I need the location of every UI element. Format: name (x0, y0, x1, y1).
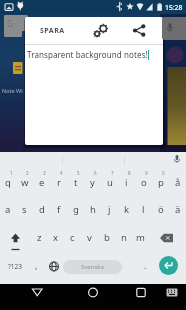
staticText: Svenska (81, 263, 104, 271)
staticText: f (57, 203, 61, 216)
staticText: Transparent background notes! (27, 49, 148, 60)
staticText: w (21, 176, 29, 189)
button[interactable]: j (101, 196, 118, 223)
button[interactable]: i (118, 169, 135, 196)
button[interactable]: w (16, 169, 33, 196)
staticText: G (7, 18, 13, 29)
staticText: i (125, 176, 128, 189)
button[interactable]: r (50, 169, 67, 196)
staticText: 1 (10, 170, 13, 176)
button[interactable]: m (132, 223, 149, 251)
staticText: t (74, 176, 78, 189)
staticText: x (53, 231, 59, 244)
button[interactable]: x (47, 223, 64, 251)
staticText: p (158, 176, 164, 189)
staticText: e (39, 176, 45, 189)
button[interactable] (162, 17, 186, 40)
button[interactable]: n (115, 223, 132, 251)
button[interactable]: å (169, 169, 186, 196)
staticText: 0 (162, 170, 165, 176)
button[interactable]: b (98, 223, 115, 251)
button[interactable]: d (33, 196, 50, 223)
staticText: 15:28 (165, 3, 183, 12)
button[interactable]: p (152, 169, 169, 196)
staticText: ?123 (8, 262, 22, 271)
staticText: k (124, 203, 130, 216)
button[interactable]: z (31, 223, 47, 251)
button[interactable] (149, 223, 186, 251)
staticText: ä (175, 203, 181, 216)
button[interactable]: v (81, 223, 98, 251)
button[interactable]: q (0, 169, 16, 196)
button[interactable]: ?123 (0, 251, 29, 282)
button[interactable]: SPARA (29, 17, 89, 44)
staticText: q (5, 176, 11, 189)
button[interactable]: o (135, 169, 152, 196)
button[interactable] (159, 256, 178, 275)
button[interactable]: k (118, 196, 135, 223)
staticText: c (70, 231, 75, 244)
staticText: 7 (111, 170, 114, 176)
staticText: r (57, 176, 61, 189)
staticText: m (136, 231, 145, 244)
button[interactable]: c (64, 223, 81, 251)
button[interactable]: Svenska (63, 260, 122, 274)
staticText: ö (158, 203, 164, 216)
button[interactable]: e (33, 169, 50, 196)
staticText: 6 (94, 170, 97, 176)
button[interactable]: f (50, 196, 67, 223)
button[interactable] (45, 251, 63, 282)
button[interactable] (160, 284, 184, 302)
button[interactable]: l (135, 196, 152, 223)
button[interactable]: h (84, 196, 101, 223)
staticText: Note Wi (2, 87, 23, 94)
staticText: g (73, 203, 79, 216)
button[interactable]: t (67, 169, 84, 196)
staticText: o (141, 176, 147, 189)
staticText: . (144, 259, 147, 271)
staticText: 5 (77, 170, 80, 176)
button[interactable]: a (0, 196, 16, 223)
staticText: 8 (128, 170, 131, 176)
staticText: 3 (43, 170, 46, 176)
staticText: , (35, 259, 38, 271)
staticText: v (87, 231, 92, 244)
staticText: 2 (26, 170, 29, 176)
staticText: å (175, 176, 181, 189)
staticText: SPARA (40, 26, 65, 36)
button[interactable] (90, 17, 111, 44)
button[interactable]: y (84, 169, 101, 196)
button[interactable] (129, 17, 150, 44)
staticText: 4 (60, 170, 63, 176)
button[interactable] (129, 284, 153, 302)
button[interactable] (81, 284, 105, 302)
button[interactable]: g (67, 196, 84, 223)
staticText: y (90, 176, 95, 189)
button[interactable] (25, 284, 49, 302)
button[interactable]: . (136, 251, 154, 282)
staticText: h (90, 203, 96, 216)
button[interactable]: u (101, 169, 118, 196)
button[interactable] (0, 223, 31, 251)
staticText: u (107, 176, 113, 189)
button[interactable]: ä (169, 196, 186, 223)
staticText: j (108, 203, 111, 216)
staticText: z (37, 231, 42, 244)
staticText: b (104, 231, 110, 244)
staticText: l (142, 203, 145, 216)
staticText: n (121, 231, 127, 244)
staticText: a (5, 203, 11, 216)
button[interactable]: ö (152, 196, 169, 223)
staticText: s (22, 203, 27, 216)
button[interactable]: , (29, 251, 44, 282)
button[interactable]: s (16, 196, 33, 223)
staticText: d (39, 203, 45, 216)
staticText: 9 (145, 170, 148, 176)
